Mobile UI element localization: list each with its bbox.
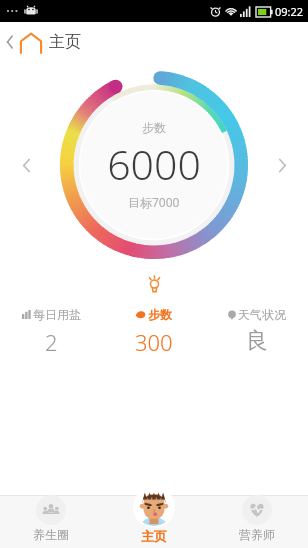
button[interactable]: 营养师 [205, 486, 308, 548]
staticText: 步数 [148, 307, 172, 322]
button[interactable]: 步数 [60, 71, 248, 259]
button[interactable]: Next [268, 151, 296, 179]
button[interactable]: 步数 [102, 303, 205, 361]
staticText: 良 [246, 327, 268, 355]
staticText: 09:22 [275, 4, 304, 19]
other: 营养师 [248, 501, 266, 519]
button[interactable]: 养生圈 [0, 486, 102, 548]
button[interactable]: 每日用盐 [0, 303, 102, 361]
staticText: 主页 [141, 528, 167, 544]
button[interactable]: Previous [12, 151, 40, 179]
staticText: 步数 [142, 120, 166, 135]
staticText: 主页 [49, 32, 81, 52]
other: 养生圈 [42, 501, 60, 519]
staticText: 6000 [107, 136, 201, 192]
staticText: 养生圈 [33, 527, 69, 542]
staticText: 天气状况 [238, 307, 286, 322]
staticText: 2 [45, 327, 58, 357]
staticText: 每日用盐 [33, 307, 81, 322]
staticText: 营养师 [239, 527, 275, 542]
button[interactable]: Tip [141, 270, 167, 296]
button[interactable]: 天气状况 [205, 303, 308, 359]
button[interactable]: 主页 [102, 486, 205, 548]
staticText: 目标7000 [128, 194, 180, 210]
button[interactable]: 主页 [3, 29, 81, 55]
staticText: 300 [135, 327, 173, 357]
